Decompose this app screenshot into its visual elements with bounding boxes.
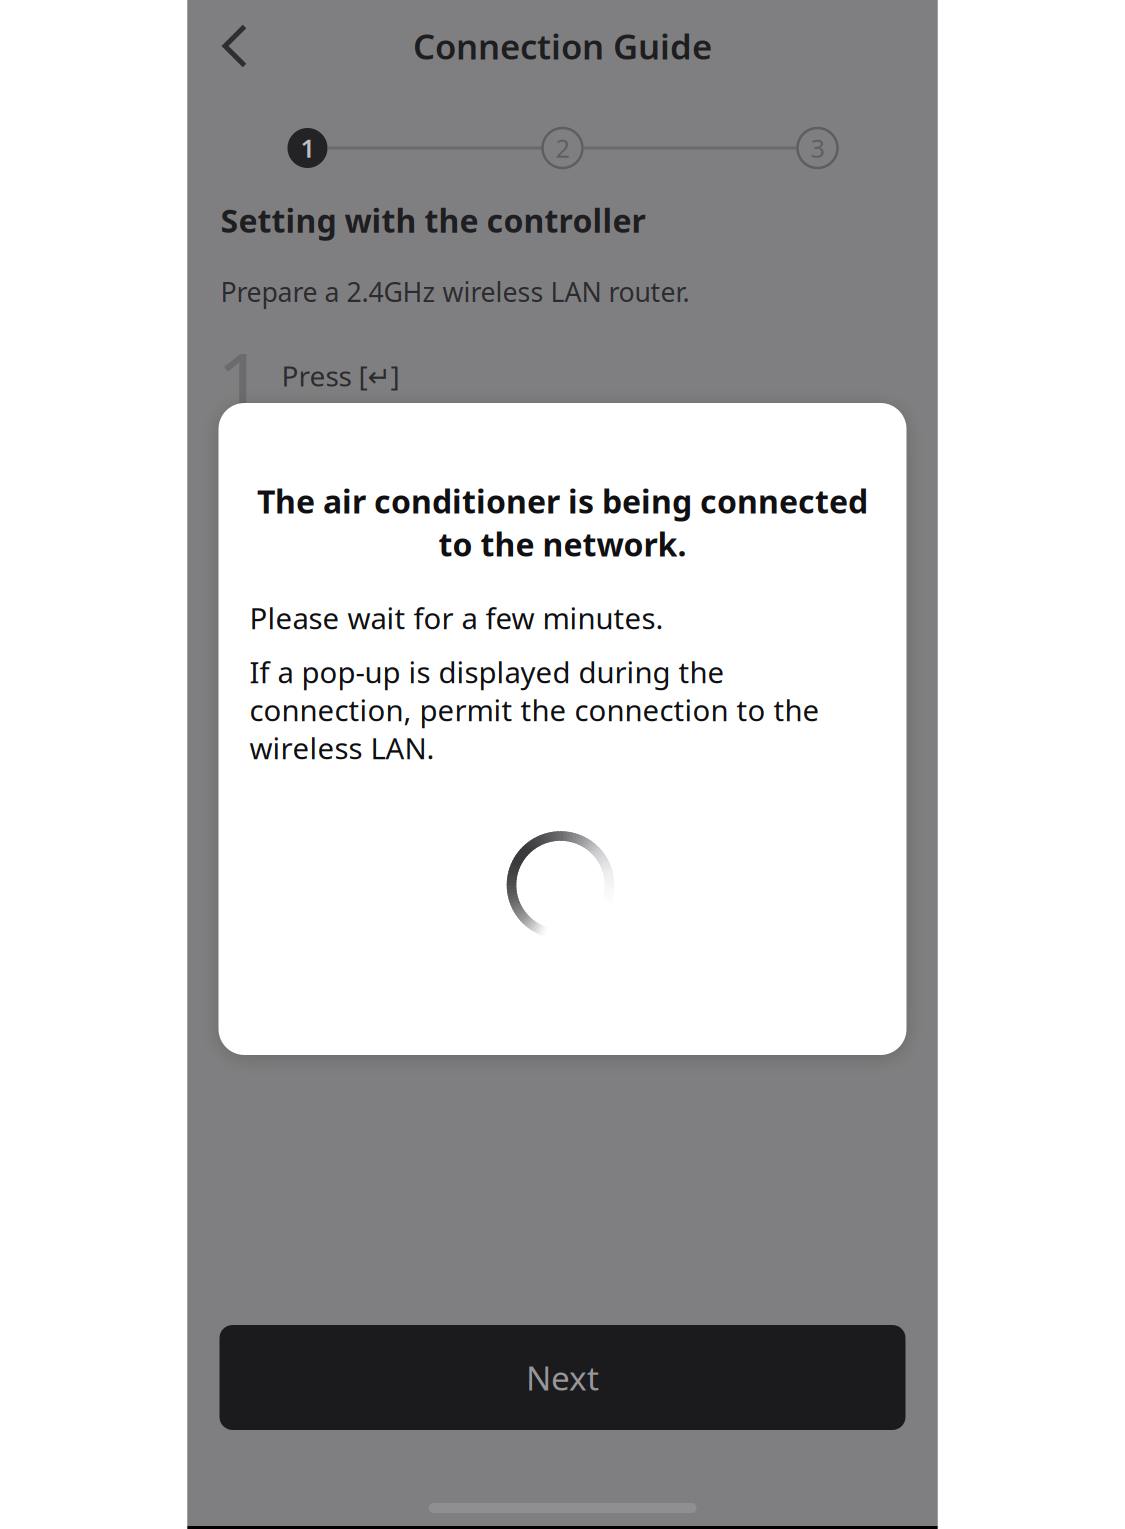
- button[interactable]: Next: [219, 1325, 905, 1430]
- staticText: If a pop-up is displayed during the: [249, 652, 724, 691]
- staticText: Press [↵]: [281, 357, 399, 394]
- staticText: Please wait for a few minutes.: [249, 598, 663, 637]
- staticText: connection, permit the connection to the: [249, 690, 819, 729]
- staticText: Connection Guide: [413, 23, 712, 69]
- staticText: Prepare a 2.4GHz wireless LAN router.: [220, 274, 689, 309]
- button[interactable]: Back: [199, 9, 269, 83]
- staticText: Setting with the controller: [220, 199, 645, 241]
- staticText: 3: [810, 131, 824, 165]
- staticText: 1: [216, 326, 264, 437]
- staticText: The air conditioner is being connected: [257, 480, 868, 522]
- staticText: 1: [300, 131, 314, 165]
- staticText: wireless LAN.: [249, 728, 434, 767]
- staticText: 2: [555, 131, 569, 165]
- staticText: Next: [526, 1355, 599, 1400]
- staticText: to the network.: [438, 523, 686, 565]
